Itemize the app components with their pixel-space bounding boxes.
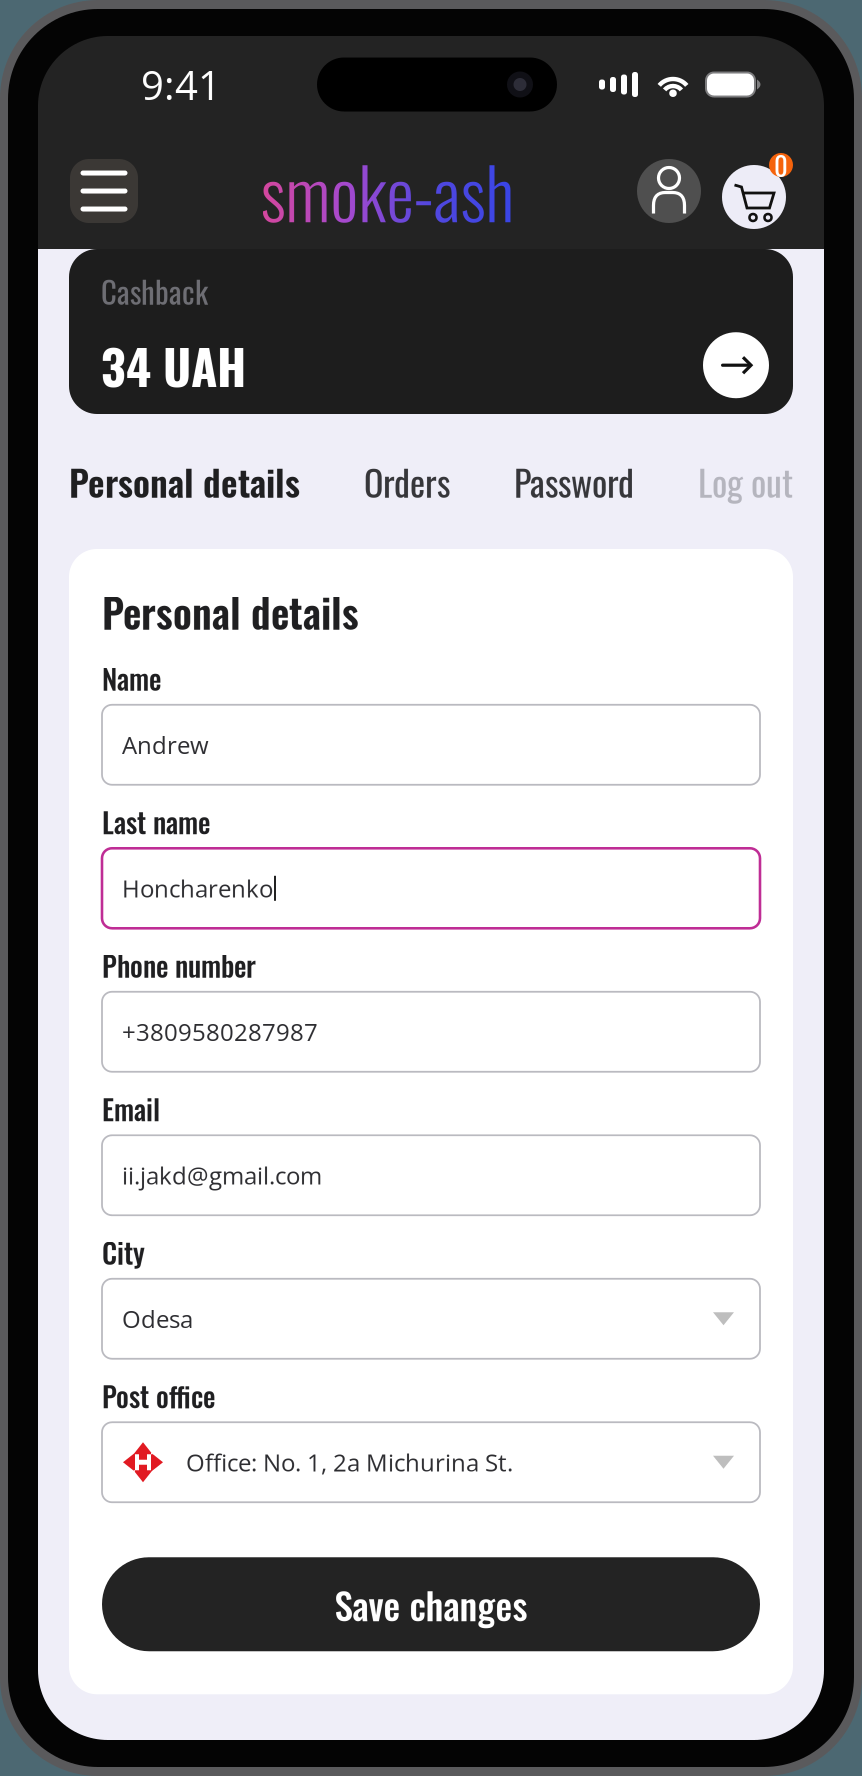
staticText: Andrew <box>122 728 209 761</box>
staticText: Password <box>514 455 634 508</box>
button[interactable]: Odesa <box>102 1279 760 1359</box>
staticText: Email <box>102 1088 160 1129</box>
staticText: City <box>102 1231 145 1273</box>
staticText: Phone number <box>102 944 256 986</box>
staticText: Cashback <box>101 268 208 314</box>
button[interactable]: +3809580287987 <box>102 992 760 1072</box>
staticText: ii.jakd@gmail.com <box>122 1159 322 1192</box>
staticText: Log out <box>698 455 793 508</box>
button[interactable]: Account <box>637 159 701 223</box>
staticText: Personal details <box>102 582 359 641</box>
staticText: 9:41 <box>141 57 221 112</box>
staticText: Name <box>102 657 161 699</box>
staticText: Personal details <box>69 455 300 508</box>
button[interactable]: Cashback details <box>703 332 769 398</box>
button[interactable]: Menu <box>70 159 138 223</box>
button[interactable]: Save changes <box>102 1557 760 1651</box>
button[interactable]: Andrew <box>102 705 760 785</box>
staticText: Save changes <box>334 1577 527 1632</box>
staticText: Odesa <box>122 1302 193 1335</box>
staticText: 34 UAH <box>101 330 246 401</box>
staticText: Honcharenko <box>122 872 273 905</box>
button[interactable]: Password <box>514 455 634 508</box>
button[interactable]: Orders <box>364 455 450 508</box>
button[interactable]: Personal details <box>69 455 300 508</box>
button[interactable]: Office: No. 1, 2a Michurina St. <box>102 1422 760 1502</box>
staticText: Office: No. 1, 2a Michurina St. <box>186 1446 513 1479</box>
staticText: Post office <box>102 1375 215 1416</box>
staticText: +3809580287987 <box>122 1015 318 1048</box>
button[interactable]: Cart <box>722 153 793 229</box>
button[interactable]: Honcharenko <box>102 848 760 928</box>
staticText: Orders <box>364 455 450 508</box>
button[interactable]: ii.jakd@gmail.com <box>102 1135 760 1215</box>
button[interactable]: Log out <box>698 455 793 508</box>
staticText: 0 <box>774 145 788 185</box>
staticText: Last name <box>102 801 210 842</box>
